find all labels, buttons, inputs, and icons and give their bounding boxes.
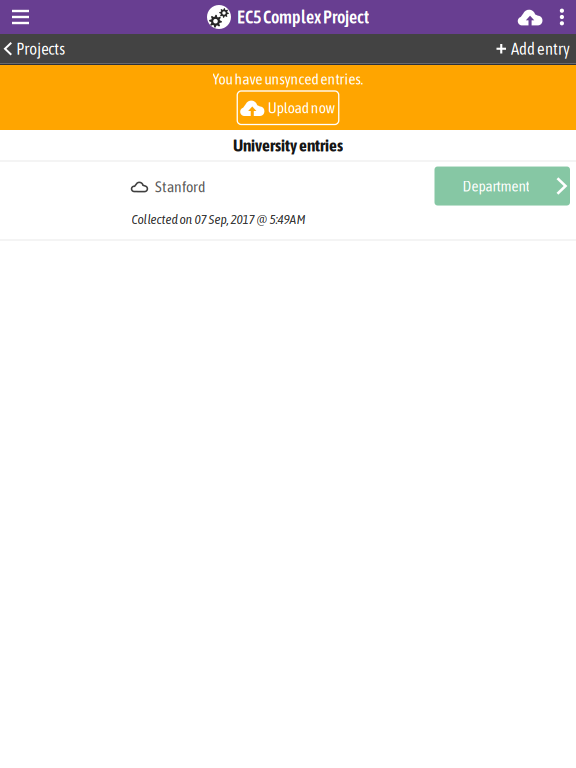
staticText: Collected on 07 Sep, 2017 @ 5:49AM bbox=[131, 211, 305, 227]
button[interactable]: Department bbox=[434, 166, 570, 205]
button[interactable]: Upload now bbox=[237, 91, 339, 124]
button[interactable]: Open navigation menu bbox=[0, 0, 39, 34]
staticText: Upload now bbox=[268, 99, 335, 117]
button[interactable]: Add entry bbox=[486, 34, 576, 63]
staticText: Projects bbox=[16, 39, 65, 58]
button[interactable]: Upload entries bbox=[508, 0, 551, 34]
button[interactable]: Stanford bbox=[0, 161, 428, 239]
button[interactable]: Projects bbox=[0, 34, 75, 63]
staticText: University entries bbox=[233, 135, 343, 155]
staticText: EC5 Complex Project bbox=[237, 7, 369, 27]
staticText: Department bbox=[462, 177, 529, 195]
button[interactable]: More options bbox=[551, 0, 576, 34]
staticText: Add entry bbox=[511, 39, 570, 58]
staticText: Stanford bbox=[155, 177, 205, 195]
staticText: You have unsynced entries. bbox=[212, 70, 363, 88]
